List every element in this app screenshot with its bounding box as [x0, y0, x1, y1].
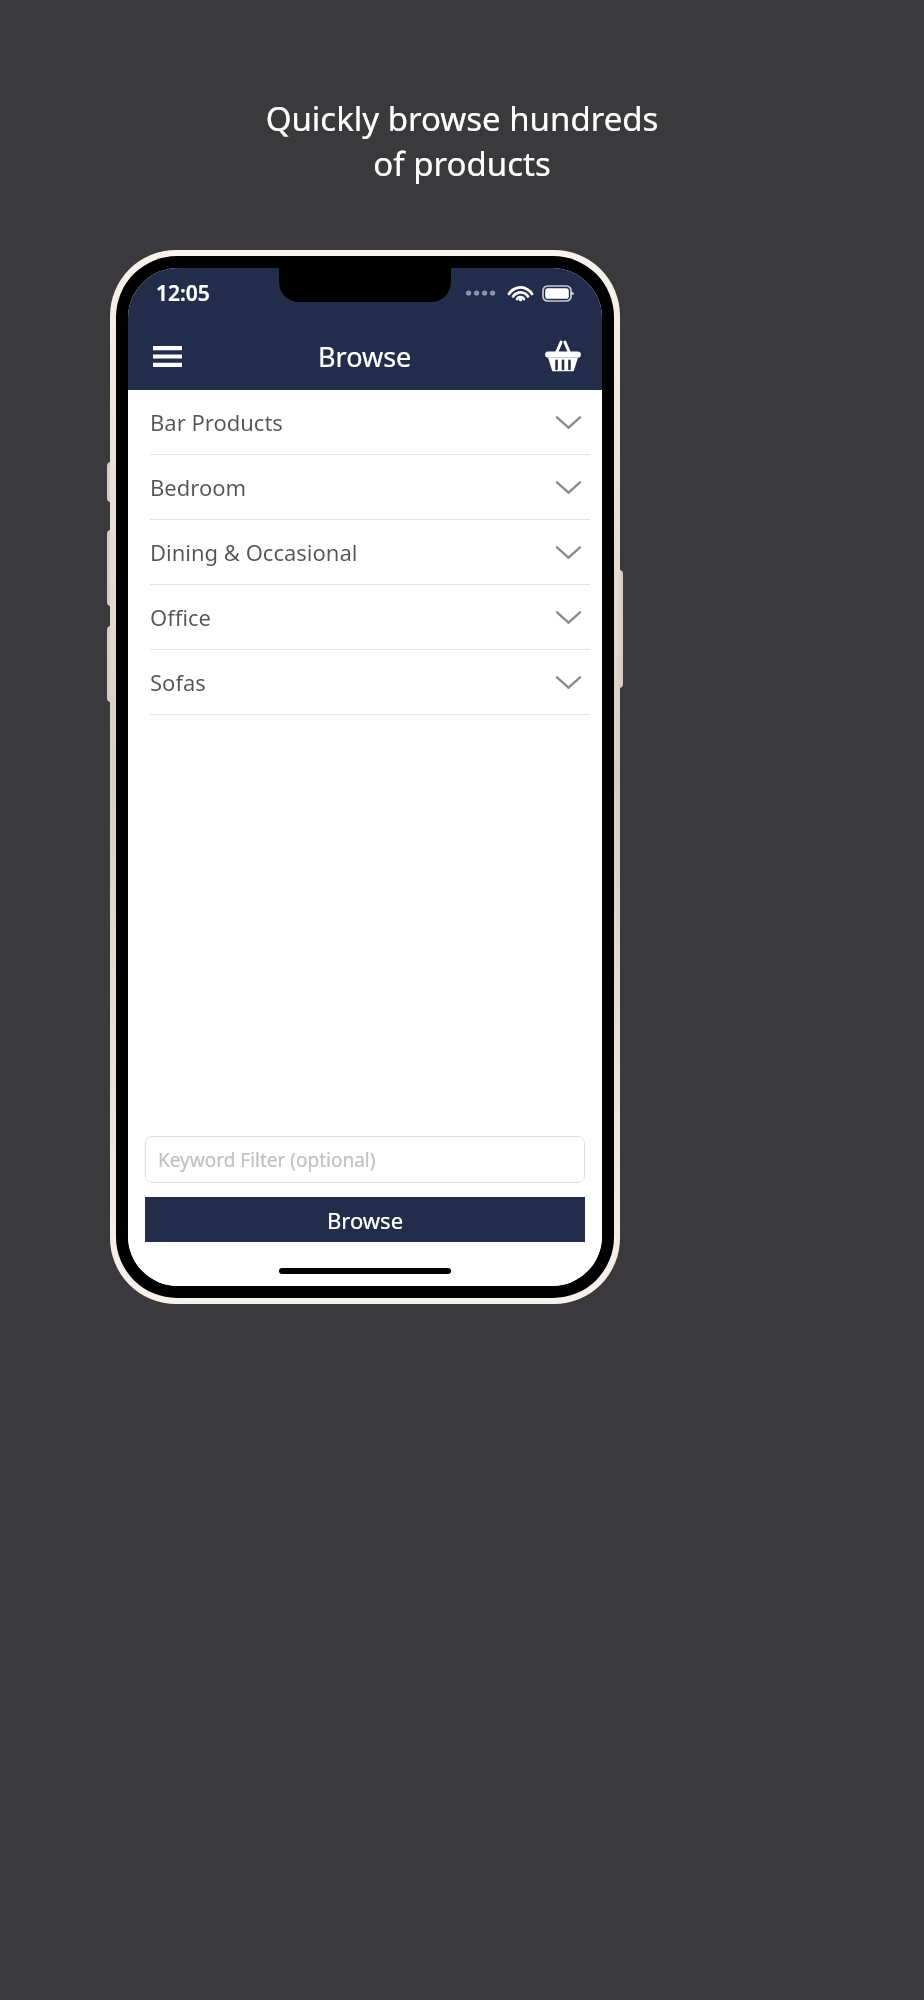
- button[interactable]: Keyword Filter (optional): [145, 1136, 585, 1183]
- staticText: Browse: [318, 338, 412, 375]
- button[interactable]: Shopping basket: [536, 329, 590, 383]
- staticText: Dining & Occasional: [150, 537, 358, 567]
- staticText: Bar Products: [150, 407, 283, 437]
- staticText: Office: [150, 602, 211, 632]
- button[interactable]: Browse: [145, 1197, 585, 1242]
- button[interactable]: Dining & Occasional: [128, 520, 602, 585]
- staticText: Quickly browse hundreds of products: [50, 96, 874, 185]
- button[interactable]: Bar Products: [128, 390, 602, 455]
- staticText: Browse: [327, 1205, 404, 1235]
- button[interactable]: Open navigation menu: [140, 329, 194, 383]
- button[interactable]: Sofas: [128, 650, 602, 715]
- staticText: Bedroom: [150, 472, 247, 502]
- button[interactable]: Bedroom: [128, 455, 602, 520]
- staticText: 12:05: [156, 279, 210, 308]
- staticText: Keyword Filter (optional): [158, 1147, 376, 1173]
- staticText: Sofas: [150, 667, 206, 697]
- button[interactable]: Office: [128, 585, 602, 650]
